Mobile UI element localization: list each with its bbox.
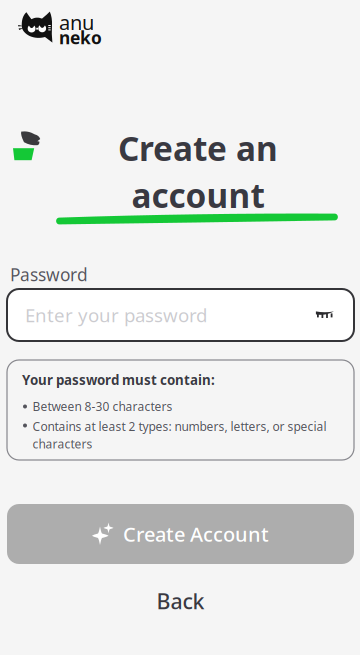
staticText: Contains at least 2 types: numbers, lett… (32, 418, 326, 434)
staticText: Enter your password (25, 303, 207, 327)
staticText: Create Account (123, 521, 269, 547)
button[interactable]: Enter your password (7, 289, 354, 341)
staticText: Between 8-30 characters (32, 398, 172, 414)
staticText: neko (59, 26, 102, 49)
staticText: account (131, 173, 264, 217)
staticText: Create an (118, 126, 278, 170)
staticText: Your password must contain: (22, 371, 215, 389)
button[interactable]: Show password (307, 297, 343, 333)
button[interactable]: Back (7, 586, 354, 616)
staticText: characters (32, 436, 92, 452)
staticText: Password (10, 263, 88, 286)
staticText: anu (59, 9, 94, 36)
staticText: Back (156, 587, 204, 615)
button[interactable]: Create Account (7, 504, 354, 564)
